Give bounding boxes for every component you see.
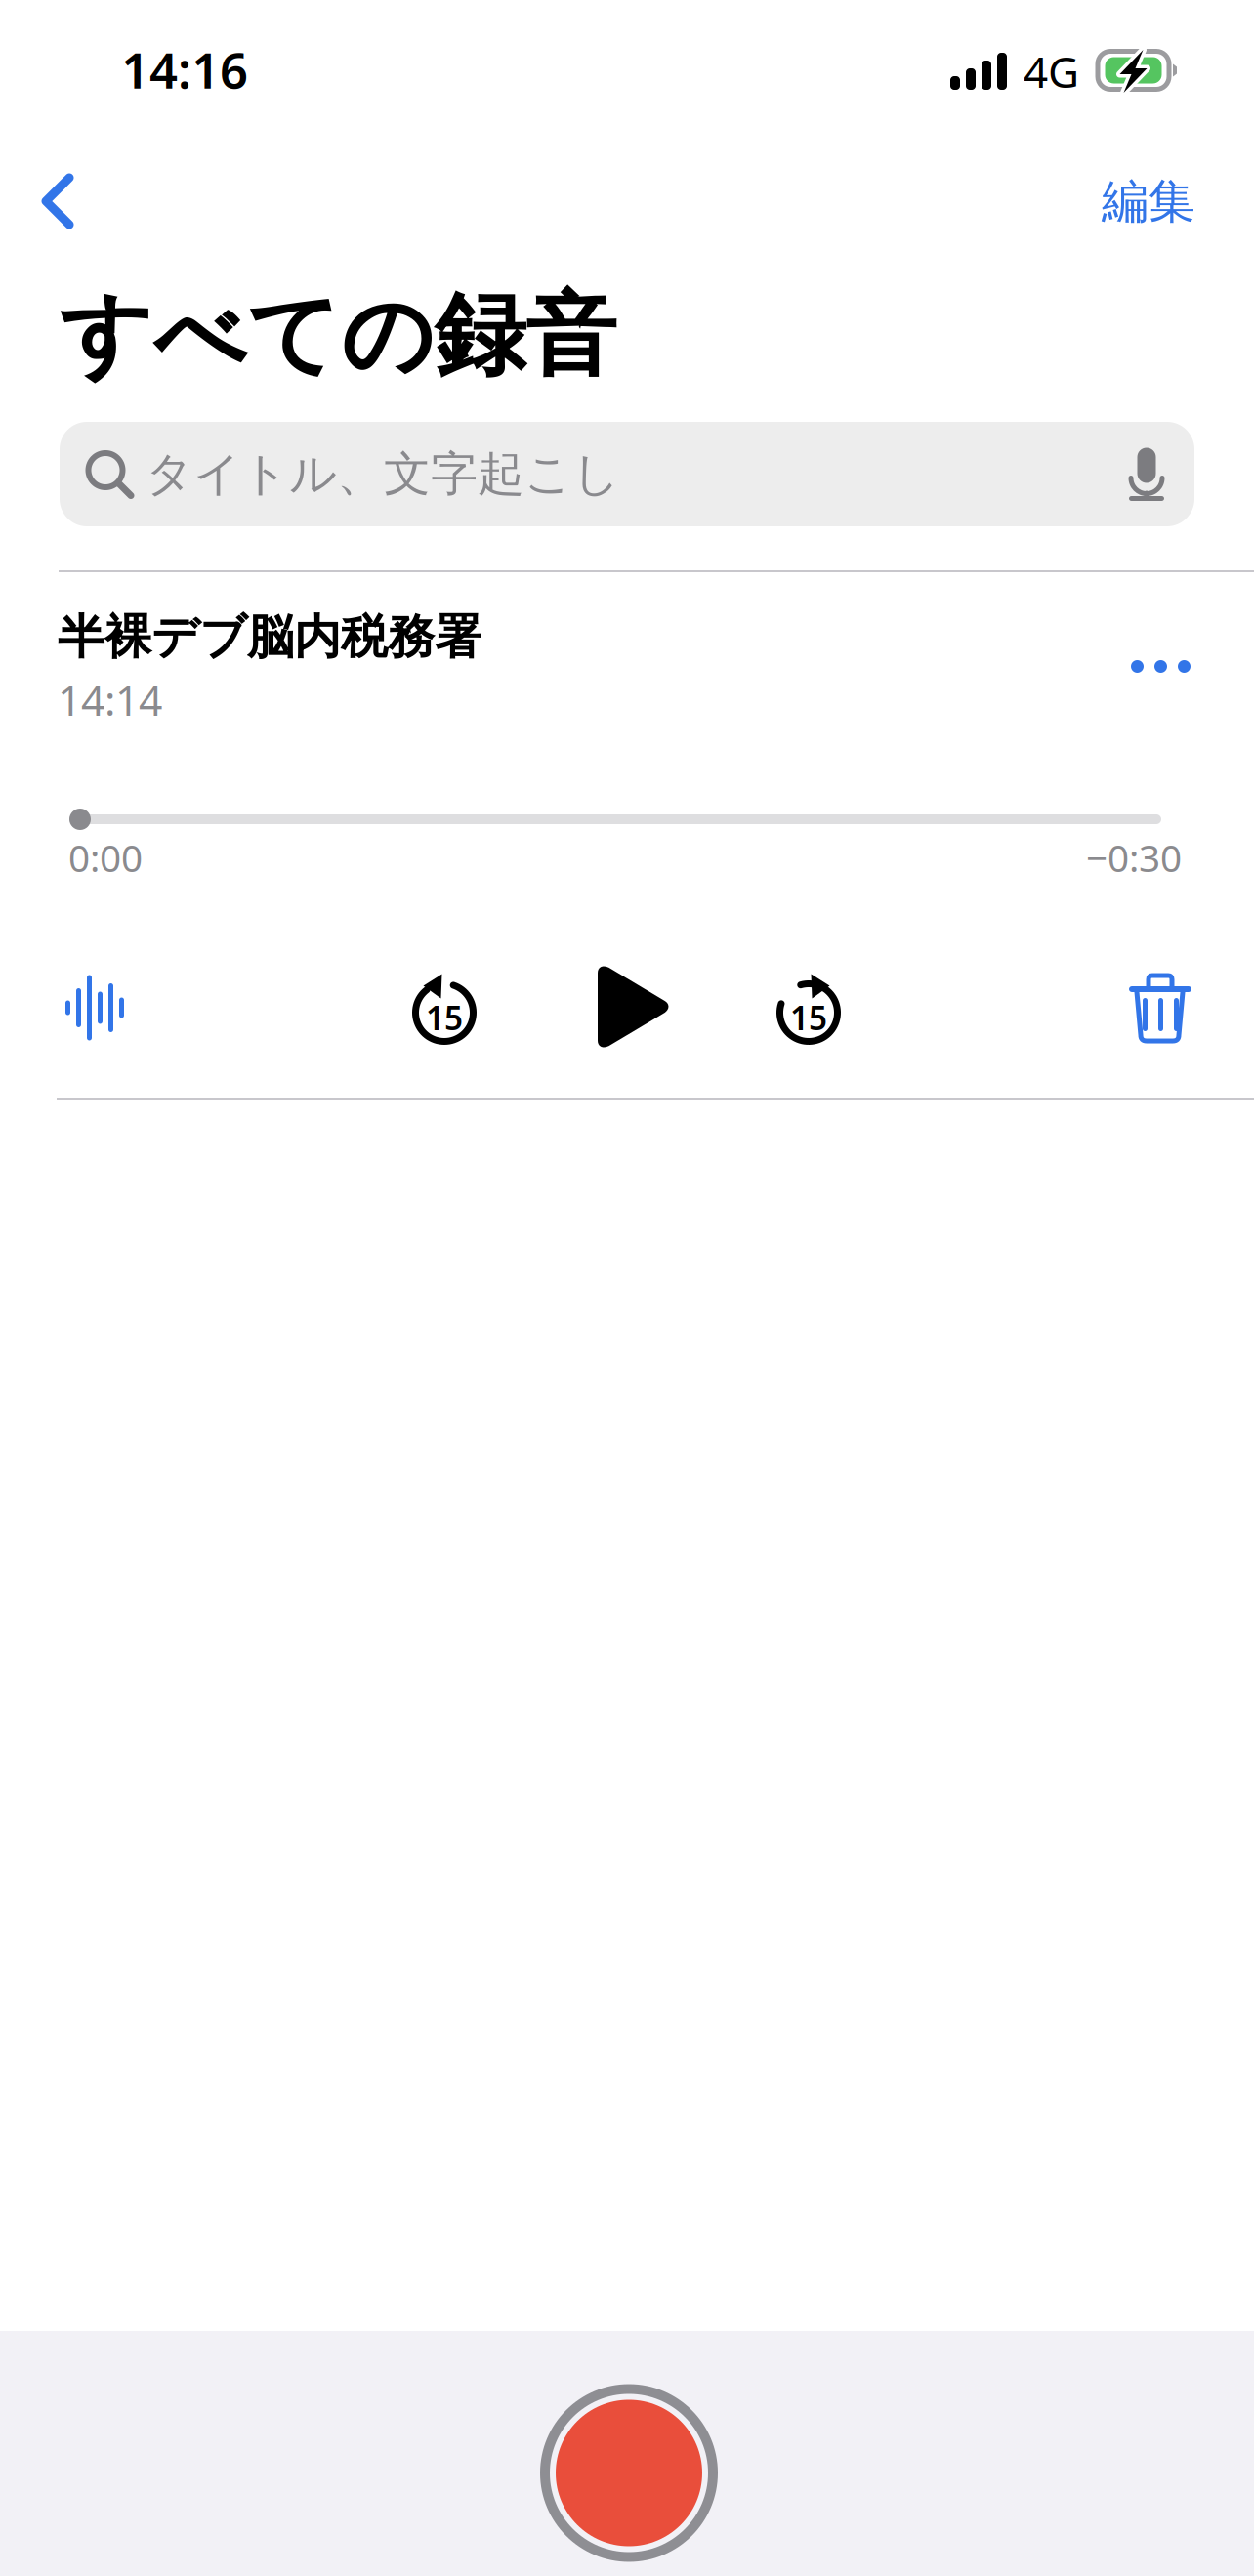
button[interactable]: 半裸デブ脳内税務署 [58, 609, 481, 721]
button[interactable]: More [1060, 609, 1187, 703]
staticText: すべての録音 [60, 280, 616, 392]
button[interactable]: Record [533, 2377, 725, 2569]
button[interactable]: Back [0, 137, 158, 267]
staticText: 編集 [1102, 173, 1195, 230]
button[interactable]: 編集 [1102, 137, 1254, 267]
staticText: 15 [426, 996, 463, 1039]
button[interactable]: Skip back 15 seconds [390, 958, 499, 1067]
staticText: 0:00 [68, 832, 143, 882]
staticText: タイトル、文字起こし [146, 445, 620, 503]
staticText: 15 [790, 996, 827, 1039]
staticText: 14:16 [121, 37, 248, 102]
staticText: 4G [1024, 43, 1079, 100]
button[interactable]: Waveform [30, 953, 159, 1062]
button[interactable]: タイトル、文字起こし [60, 422, 1194, 526]
staticText: −0:30 [1086, 832, 1182, 882]
staticText: 14:14 [58, 672, 162, 727]
staticText: 半裸デブ脳内税務署 [58, 608, 481, 666]
button[interactable]: Play [578, 952, 688, 1061]
button[interactable]: Delete [1096, 954, 1225, 1063]
button[interactable]: Skip forward 15 seconds [754, 958, 863, 1067]
